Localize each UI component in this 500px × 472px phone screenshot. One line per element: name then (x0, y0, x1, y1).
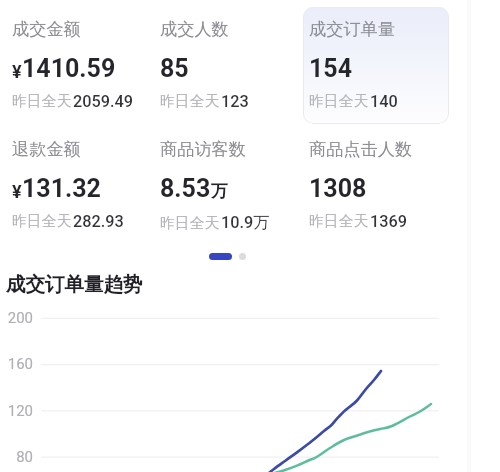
staticText: 123 (221, 92, 249, 111)
button[interactable]: 商品点击人数 (309, 138, 449, 244)
staticText: 154 (309, 54, 353, 83)
staticText: 成交订单量 (309, 18, 395, 40)
staticText: 1308 (309, 174, 367, 203)
staticText: 万 (211, 181, 228, 202)
staticText: ¥ (12, 181, 22, 202)
staticText: 1410.59 (22, 54, 116, 83)
staticText: 131.32 (22, 174, 101, 203)
button[interactable]: 成交金额 (12, 18, 152, 124)
button[interactable]: Page indicator (209, 253, 246, 260)
staticText: 昨日全天 (12, 92, 72, 111)
staticText: 140 (370, 92, 398, 111)
button[interactable]: 成交人数 (160, 18, 300, 124)
staticText: 120 (0, 402, 33, 420)
staticText: 160 (0, 355, 33, 373)
staticText: 成交订单量趋势 (6, 272, 143, 297)
staticText: 成交人数 (160, 18, 229, 40)
staticText: ¥ (12, 61, 22, 82)
staticText: 商品点击人数 (309, 138, 413, 160)
staticText: 200 (0, 309, 33, 327)
staticText: 昨日全天 (12, 212, 72, 231)
staticText: 10.9万 (221, 212, 270, 233)
staticText: 退款金额 (12, 138, 81, 160)
staticText: 成交金额 (12, 18, 81, 40)
staticText: 85 (160, 54, 189, 83)
staticText: 282.93 (73, 212, 124, 231)
staticText: 昨日全天 (160, 214, 220, 233)
button[interactable] (303, 7, 449, 124)
staticText: 昨日全天 (309, 212, 369, 231)
staticText: 80 (0, 448, 33, 466)
staticText: 昨日全天 (160, 92, 220, 111)
staticText: 商品访客数 (160, 138, 246, 160)
staticText: 昨日全天 (309, 92, 369, 111)
staticText: 8.53 (160, 174, 211, 203)
button[interactable]: 退款金额 (12, 138, 152, 244)
staticText: 2059.49 (73, 92, 134, 111)
button[interactable]: 商品访客数 (160, 138, 300, 244)
button[interactable]: 成交订单量 (309, 18, 449, 124)
staticText: 1369 (370, 212, 408, 231)
